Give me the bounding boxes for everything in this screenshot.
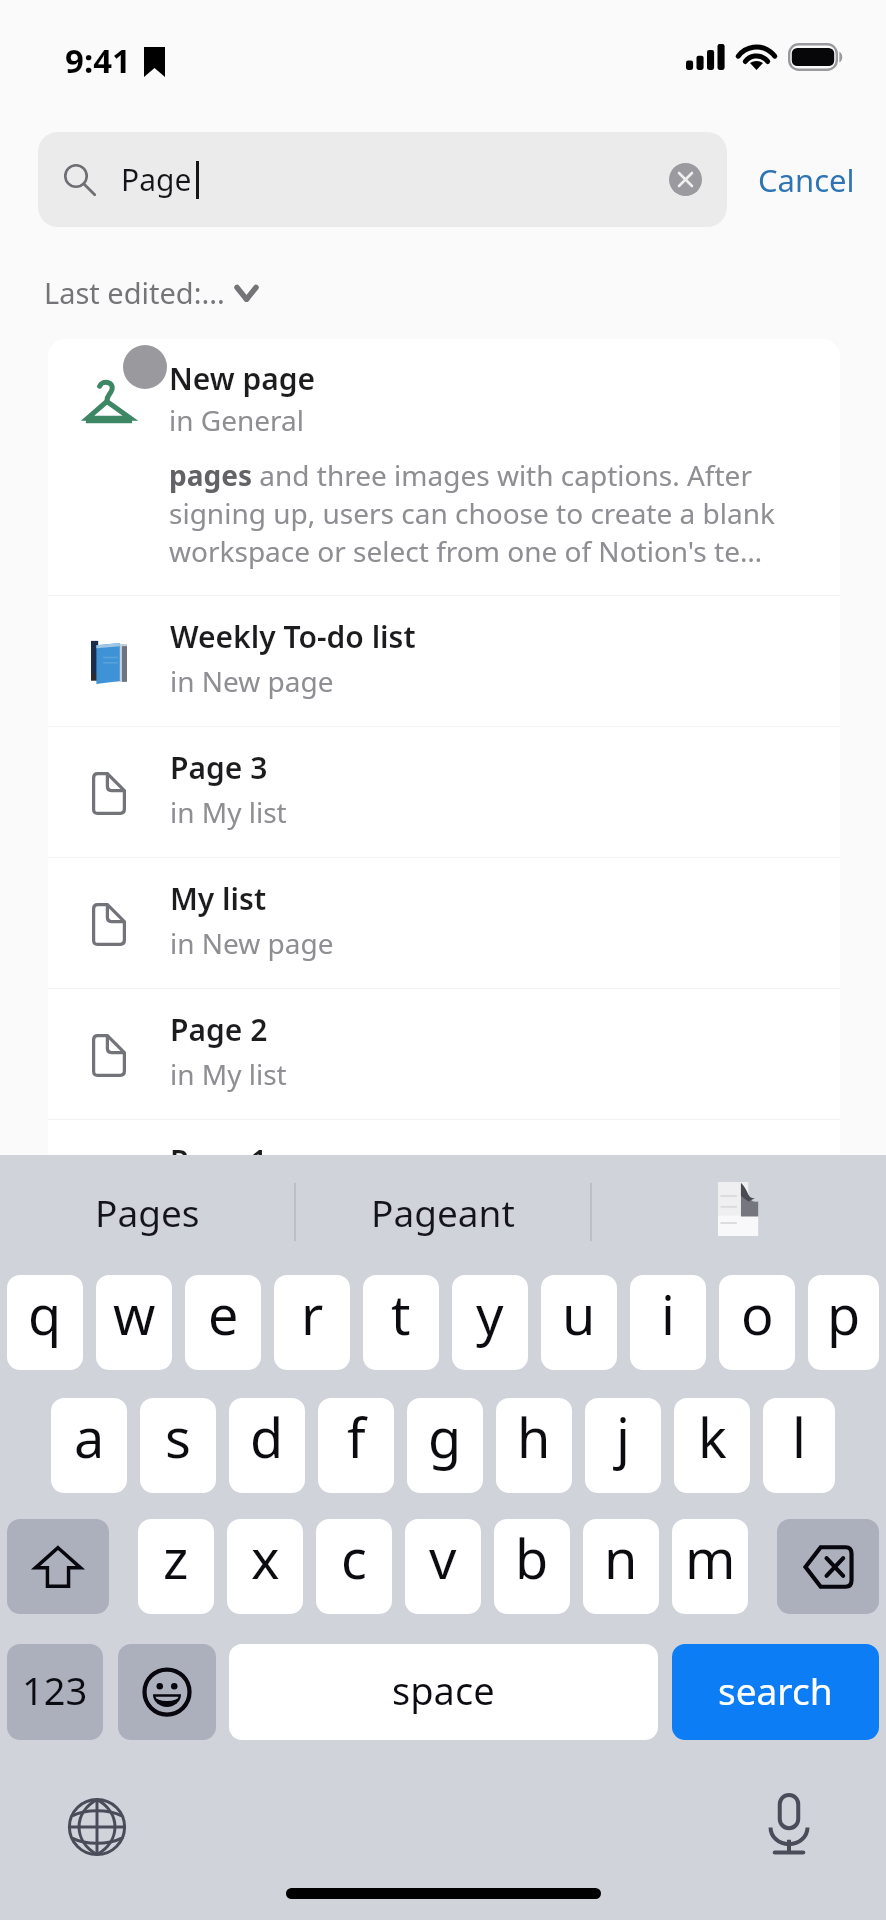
staticText: f [347, 1400, 366, 1474]
button[interactable]: Cancel [727, 132, 886, 227]
staticText: Last edited:... [44, 273, 225, 312]
staticText: in General [169, 401, 305, 439]
staticText: signing up, users can choose to create a… [169, 494, 775, 532]
button[interactable]: Last edited:... [31, 259, 271, 326]
button[interactable]: t [363, 1275, 439, 1370]
button[interactable]: o [719, 1275, 795, 1370]
staticText: Weekly To-do list [170, 616, 416, 657]
button[interactable]: j [585, 1398, 661, 1493]
button[interactable]: Page [38, 132, 727, 227]
staticText: 123 [22, 1664, 88, 1716]
button[interactable]: space [229, 1644, 658, 1740]
button[interactable]: p [808, 1275, 879, 1370]
button[interactable]: n [583, 1519, 659, 1614]
button[interactable]: a [51, 1398, 127, 1493]
button[interactable]: Shift [7, 1519, 109, 1614]
staticText: q [28, 1277, 62, 1351]
button[interactable]: k [674, 1398, 750, 1493]
staticText: i [661, 1277, 675, 1351]
staticText: m [685, 1521, 736, 1595]
staticText: Pageant [371, 1187, 515, 1237]
button[interactable]: v [405, 1519, 481, 1614]
button[interactable]: u [541, 1275, 617, 1370]
staticText: in My list [170, 1055, 287, 1093]
button[interactable]: Emoji suggestion [592, 1155, 886, 1269]
button[interactable]: g [407, 1398, 483, 1493]
button[interactable]: Change keyboard [57, 1787, 137, 1867]
button[interactable]: f [318, 1398, 394, 1493]
staticText: pages [169, 456, 252, 494]
staticText: r [301, 1277, 324, 1351]
staticText: Cancel [758, 159, 855, 201]
button[interactable]: s [140, 1398, 216, 1493]
staticText: n [604, 1521, 638, 1595]
staticText: y [476, 1277, 504, 1351]
button[interactable]: b [494, 1519, 570, 1614]
staticText: o [741, 1277, 774, 1351]
button[interactable]: Clear search [669, 163, 702, 196]
button[interactable]: My list [48, 858, 840, 988]
staticText: w [113, 1277, 156, 1351]
staticText: e [208, 1277, 239, 1351]
staticText: in My list [170, 1186, 287, 1224]
staticText: t [391, 1277, 411, 1351]
button[interactable]: m [672, 1519, 748, 1614]
staticText: in My list [170, 793, 287, 831]
staticText: Page 1 [170, 1140, 268, 1181]
staticText: g [428, 1400, 462, 1474]
button[interactable]: y [452, 1275, 528, 1370]
staticText: in New page [170, 924, 334, 962]
staticText: s [165, 1400, 191, 1474]
button[interactable]: Pageant [296, 1155, 590, 1269]
staticText: Page [121, 159, 192, 200]
staticText: workspace or select from one of Notion's… [169, 532, 763, 570]
staticText: h [517, 1400, 551, 1474]
button[interactable]: i [630, 1275, 706, 1370]
staticText: k [698, 1400, 727, 1474]
staticText: My list [170, 878, 267, 919]
button[interactable]: Page 3 [48, 727, 840, 857]
button[interactable]: Weekly To-do list [48, 596, 840, 726]
staticText: a [74, 1400, 105, 1474]
staticText: d [250, 1400, 284, 1474]
button[interactable]: Backspace [777, 1519, 879, 1614]
button[interactable]: e [185, 1275, 261, 1370]
staticText: b [515, 1521, 549, 1595]
button[interactable]: Emoji keyboard [118, 1644, 216, 1740]
button[interactable]: Page 2 [48, 989, 840, 1119]
button[interactable]: d [229, 1398, 305, 1493]
staticText: in New page [170, 662, 334, 700]
button[interactable]: c [316, 1519, 392, 1614]
staticText: l [792, 1400, 806, 1474]
button[interactable]: Page 1 [48, 1120, 840, 1250]
button[interactable]: z [138, 1519, 214, 1614]
button[interactable]: Pages [0, 1155, 294, 1269]
button[interactable]: h [496, 1398, 572, 1493]
staticText: and three images with captions. After [252, 456, 752, 494]
button[interactable]: q [7, 1275, 83, 1370]
button[interactable]: 123 [7, 1644, 103, 1740]
staticText: u [562, 1277, 596, 1351]
staticText: x [251, 1521, 280, 1595]
staticText: Page 2 [170, 1009, 268, 1050]
staticText: Pages [95, 1187, 200, 1237]
staticText: Page 3 [170, 747, 268, 788]
button[interactable]: w [96, 1275, 172, 1370]
staticText: j [616, 1400, 630, 1474]
button[interactable]: l [763, 1398, 835, 1493]
button[interactable]: x [227, 1519, 303, 1614]
staticText: v [429, 1521, 457, 1595]
staticText: c [341, 1521, 367, 1595]
staticText: New page [169, 358, 316, 399]
button[interactable]: r [274, 1275, 350, 1370]
button[interactable]: Dictation [758, 1787, 820, 1863]
staticText: p [827, 1277, 861, 1351]
staticText: z [163, 1521, 189, 1595]
staticText: search [718, 1665, 833, 1715]
staticText: space [392, 1664, 495, 1716]
button[interactable]: search [672, 1644, 879, 1740]
button[interactable]: New page [48, 339, 840, 595]
staticText: 9:41 [65, 38, 131, 83]
